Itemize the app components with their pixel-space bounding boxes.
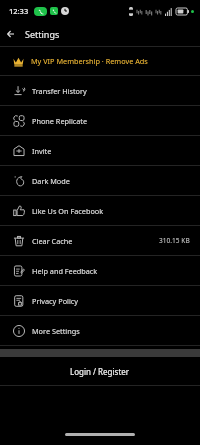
staticText: Settings (25, 28, 60, 40)
button[interactable]: Back (0, 23, 22, 45)
staticText: Help and Feedback (32, 266, 98, 276)
button[interactable]: Phone Replicate (0, 106, 200, 135)
staticText: Login / Register (70, 366, 130, 377)
button[interactable]: My VIP Membership · Remove Ads (0, 47, 200, 75)
button[interactable]: Clear Cache (0, 226, 200, 255)
staticText: More Settings (32, 326, 80, 336)
staticText: Clear Cache (32, 236, 73, 246)
button[interactable]: Like Us On Facebook (0, 196, 200, 225)
staticText: Transfer History (32, 86, 87, 96)
staticText: My VIP Membership · Remove Ads (31, 56, 148, 66)
staticText: Privacy Policy (32, 296, 79, 306)
staticText: 310.15 KB (159, 236, 190, 245)
staticText: Phone Replicate (32, 116, 88, 126)
staticText: 12:33 (9, 6, 29, 16)
button[interactable]: Login / Register (0, 357, 200, 385)
staticText: Dark Mode (32, 176, 70, 186)
button[interactable]: Help and Feedback (0, 256, 200, 285)
button[interactable]: Invite (0, 136, 200, 165)
button[interactable]: More Settings (0, 316, 200, 345)
button[interactable]: Dark Mode (0, 166, 200, 195)
button[interactable]: Transfer History (0, 76, 200, 105)
staticText: Like Us On Facebook (32, 206, 104, 216)
staticText: Invite (32, 146, 52, 156)
button[interactable]: Privacy Policy (0, 286, 200, 315)
